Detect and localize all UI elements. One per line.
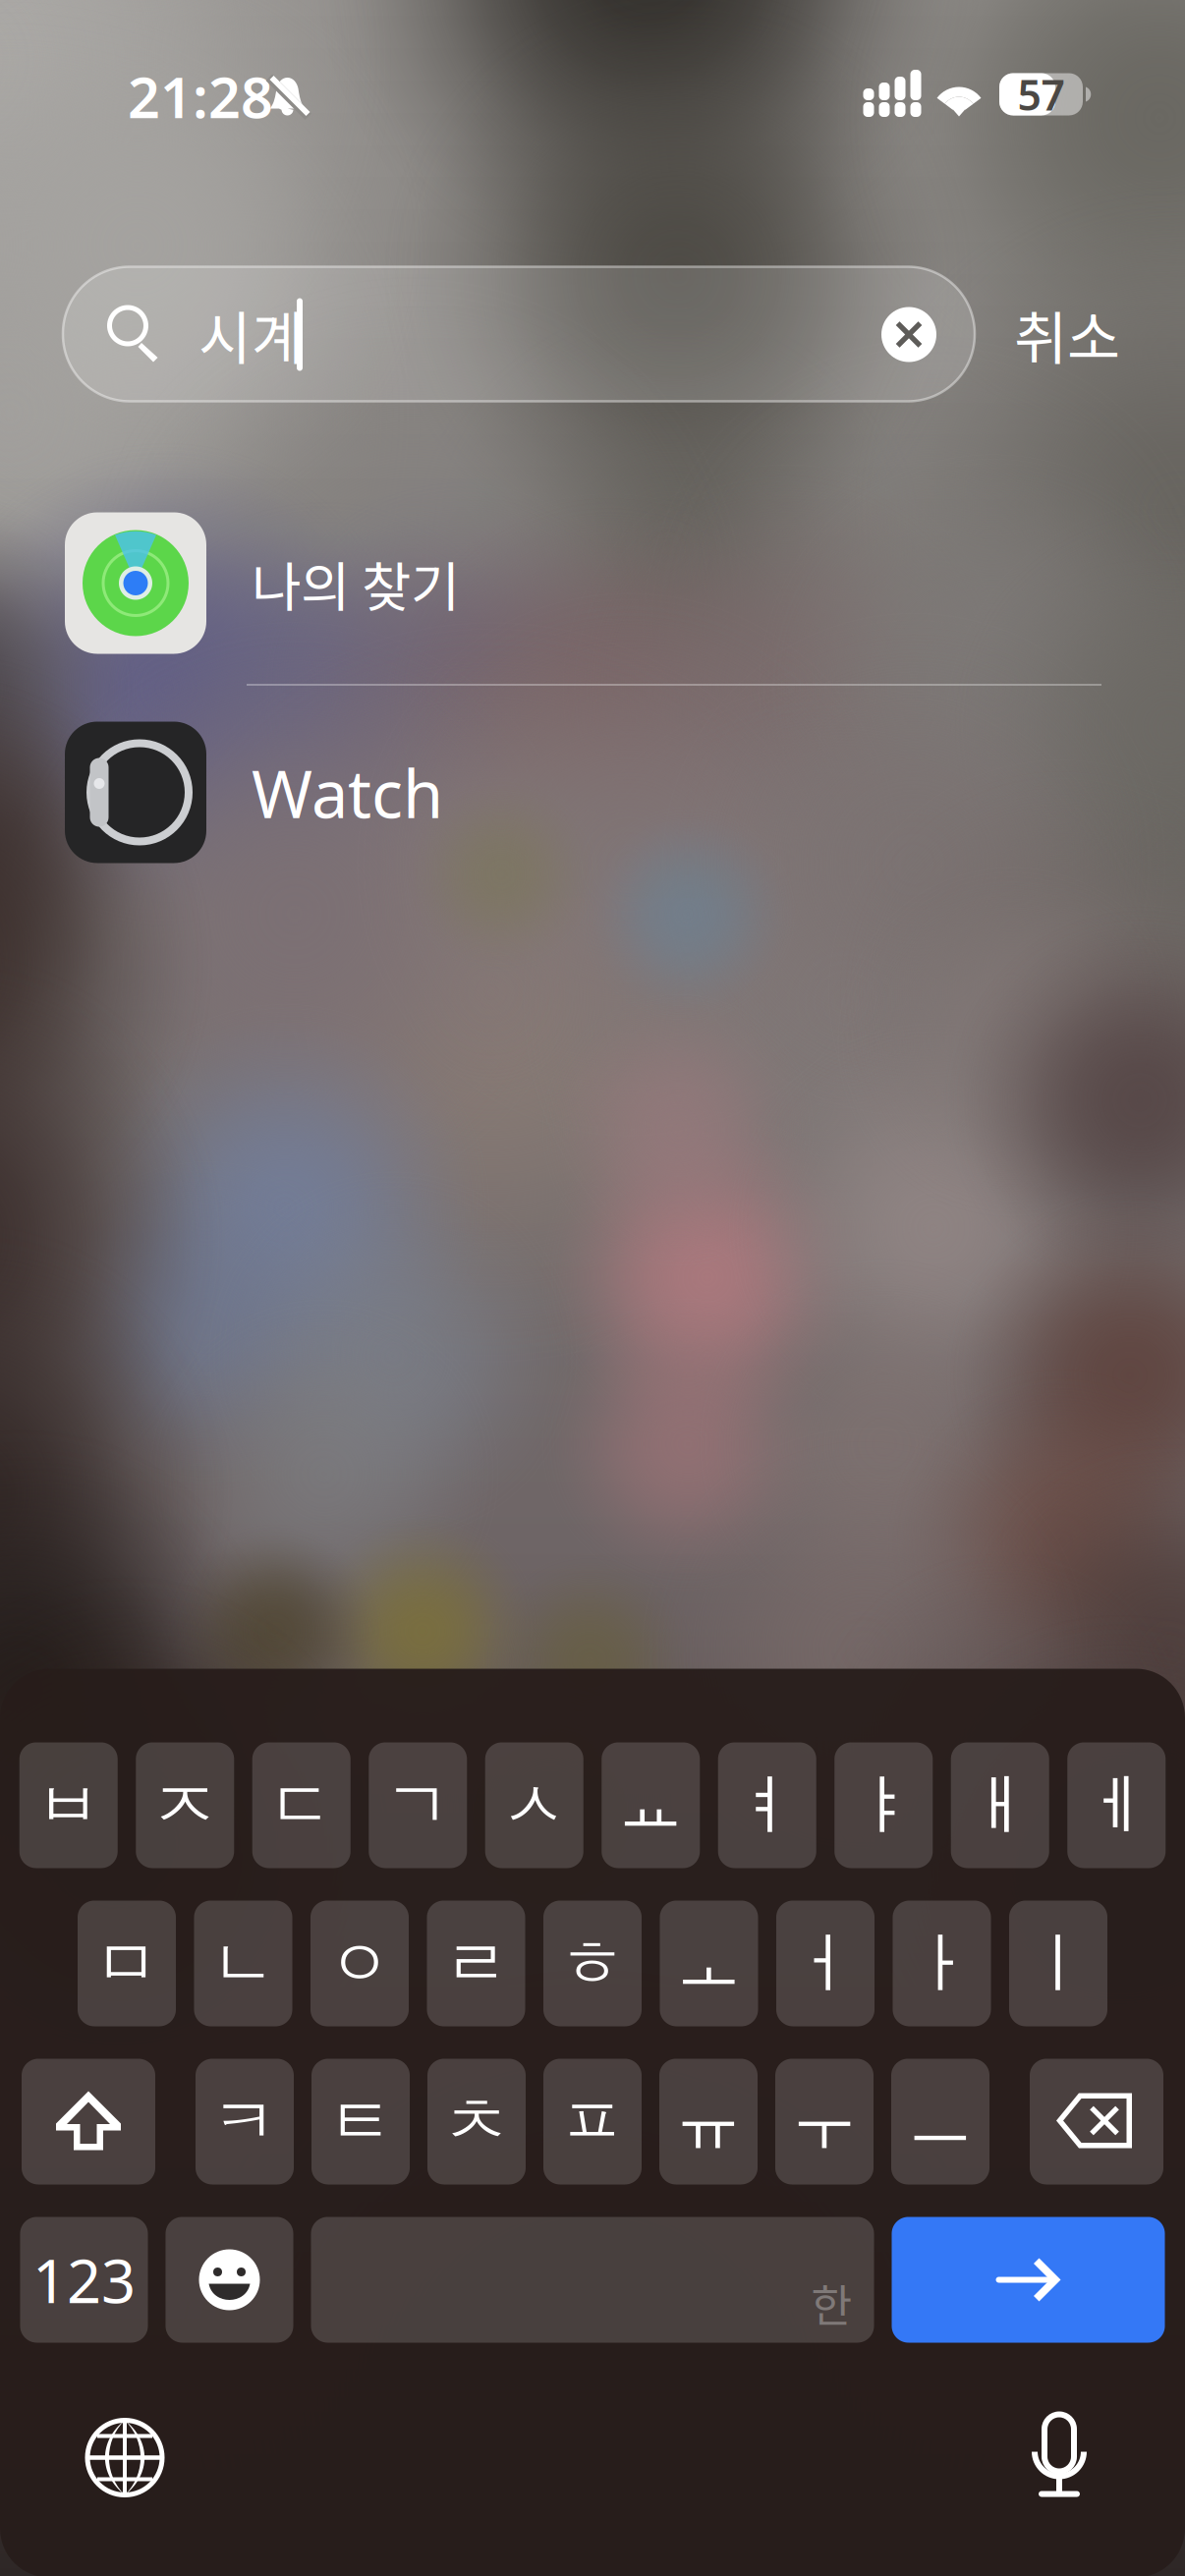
button[interactable]: ㅏ	[893, 1901, 991, 2026]
staticText: ㄷ	[268, 1765, 334, 1846]
button[interactable]: Shift	[22, 2059, 155, 2184]
button[interactable]: ㅅ	[485, 1742, 583, 1868]
button[interactable]: ㅋ	[196, 2059, 294, 2184]
staticText: 시계	[198, 292, 305, 376]
staticText: ㅣ	[1025, 1923, 1091, 2004]
button[interactable]: ㅑ	[834, 1742, 933, 1868]
staticText: ㅑ	[851, 1765, 917, 1846]
staticText: ㅍ	[560, 2081, 625, 2162]
button[interactable]: ㅌ	[311, 2059, 410, 2184]
staticText: ㄴ	[210, 1923, 276, 2004]
button[interactable]: ㄹ	[427, 1901, 525, 2026]
staticText: ㅡ	[907, 2081, 973, 2162]
staticText: ㅅ	[501, 1765, 567, 1846]
button[interactable]: ㅔ	[1067, 1742, 1166, 1868]
button[interactable]: ㅓ	[776, 1901, 875, 2026]
button[interactable]: ㅇ	[310, 1901, 409, 2026]
staticText: ㅁ	[94, 1923, 160, 2004]
staticText: Watch	[252, 749, 443, 836]
staticText: ㅂ	[36, 1765, 101, 1846]
button[interactable]: ㅎ	[543, 1901, 642, 2026]
button[interactable]: ㄷ	[252, 1742, 351, 1868]
staticText: ㅏ	[909, 1923, 975, 2004]
staticText: ㅊ	[444, 2081, 509, 2162]
staticText: 한	[811, 2270, 852, 2335]
button[interactable]: ㅛ	[602, 1742, 700, 1868]
staticText: ㄹ	[443, 1923, 509, 2004]
button[interactable]: ㅣ	[1009, 1901, 1107, 2026]
staticText: ㅇ	[327, 1923, 393, 2004]
button[interactable]: Return	[892, 2217, 1165, 2343]
staticText: ㅎ	[560, 1923, 625, 2004]
button[interactable]: Dictation	[1000, 2399, 1118, 2517]
staticText: ㅌ	[328, 2081, 394, 2162]
button[interactable]: ㅐ	[951, 1742, 1049, 1868]
button[interactable]: ㅗ	[660, 1901, 758, 2026]
staticText: ㅠ	[676, 2081, 741, 2162]
button[interactable]: Delete	[1030, 2059, 1163, 2184]
staticText: 취소	[1014, 292, 1120, 376]
staticText: ㅋ	[212, 2081, 278, 2162]
button[interactable]: Emoji	[166, 2217, 293, 2343]
button[interactable]: ㅠ	[659, 2059, 758, 2184]
button[interactable]: ㅜ	[775, 2059, 874, 2184]
staticText: ㅔ	[1084, 1765, 1149, 1846]
button[interactable]: Next keyboard	[66, 2399, 184, 2517]
button[interactable]: ㅍ	[543, 2059, 642, 2184]
button[interactable]: ㅈ	[136, 1742, 234, 1868]
button[interactable]: 123	[20, 2217, 148, 2343]
staticText: 나의 찾기	[252, 545, 460, 622]
staticText: ㄱ	[385, 1765, 451, 1846]
button[interactable]: ㅁ	[78, 1901, 176, 2026]
button[interactable]: 나의 찾기	[0, 479, 1185, 688]
button[interactable]: ㅕ	[718, 1742, 816, 1868]
staticText: ㅓ	[792, 1923, 858, 2004]
staticText: ㅛ	[618, 1765, 684, 1846]
button[interactable]: ㅊ	[427, 2059, 526, 2184]
button[interactable]: Space	[311, 2217, 874, 2343]
staticText: ㅈ	[152, 1765, 218, 1846]
staticText: ㅕ	[734, 1765, 800, 1846]
staticText: 21:28	[128, 59, 273, 134]
button[interactable]: Watch	[0, 688, 1185, 897]
staticText: ㅐ	[967, 1765, 1033, 1846]
button[interactable]: ㄴ	[194, 1901, 292, 2026]
staticText: ㅗ	[676, 1923, 742, 2004]
staticText: 57	[1017, 67, 1065, 122]
button[interactable]: ㅡ	[891, 2059, 989, 2184]
staticText: 123	[32, 2240, 136, 2320]
button[interactable]: 시계	[63, 267, 975, 401]
button[interactable]: ㅂ	[19, 1742, 118, 1868]
button[interactable]: ㄱ	[369, 1742, 467, 1868]
button[interactable]: 취소	[988, 280, 1146, 388]
staticText: ㅜ	[791, 2081, 857, 2162]
